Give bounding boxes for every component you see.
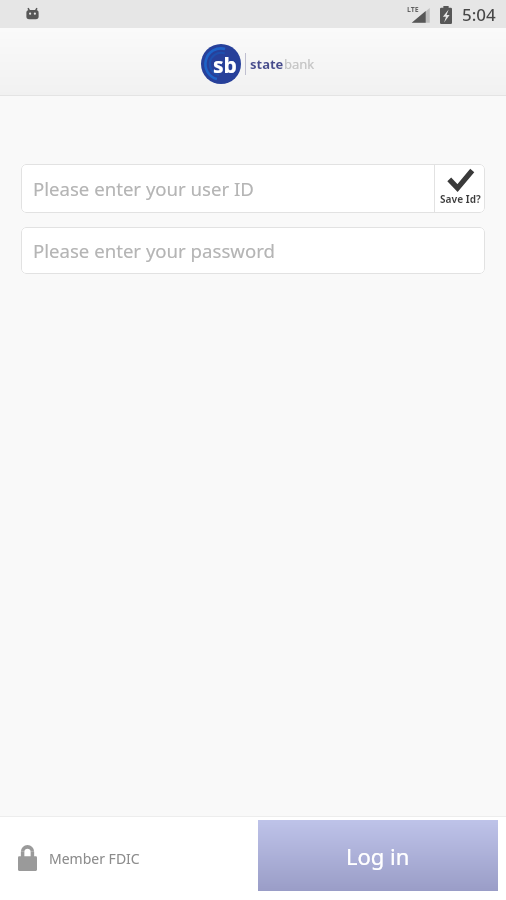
- staticText: LTE: [407, 5, 419, 15]
- staticText: bank: [284, 55, 315, 73]
- staticText: Save Id?: [440, 192, 481, 206]
- staticText: state: [250, 55, 284, 73]
- button[interactable]: Save Id: [435, 164, 485, 213]
- staticText: Log in: [346, 841, 410, 871]
- staticText: 5:04: [462, 3, 496, 26]
- staticText: Member FDIC: [49, 849, 140, 868]
- button[interactable]: Please enter your password: [21, 227, 485, 274]
- staticText: sb: [213, 51, 237, 80]
- button[interactable]: Member FDIC: [0, 836, 152, 880]
- staticText: Please enter your user ID: [33, 176, 254, 201]
- button[interactable]: Log in: [258, 820, 498, 891]
- staticText: Please enter your password: [33, 238, 275, 263]
- button[interactable]: Please enter your user ID: [21, 164, 434, 213]
